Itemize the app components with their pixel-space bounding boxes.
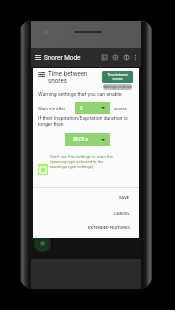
button[interactable]: More options [132, 48, 139, 67]
staticText: snores [114, 106, 127, 111]
staticText: 5 [80, 106, 83, 111]
staticText: 00:05 s [73, 137, 88, 142]
staticText: Time between snores [107, 73, 128, 81]
staticText: If their Inspiration/Expiration duration… [38, 115, 128, 121]
staticText: CANCEL [114, 211, 130, 216]
button[interactable]: Open navigation drawer [31, 48, 44, 67]
button[interactable]: Warnings on phone [103, 84, 132, 90]
button[interactable]: Statistics [99, 48, 110, 67]
button[interactable]: Record [110, 48, 121, 67]
button[interactable]: CANCEL [112, 207, 132, 220]
staticText: SAVE [119, 195, 130, 200]
staticText: warnings type settings) [50, 164, 94, 169]
staticText: Don't use this settings to warn the [50, 154, 113, 159]
staticText: longer than [38, 121, 64, 127]
staticText: snores [48, 77, 67, 84]
staticText: EXTENDED FEATURES [88, 225, 130, 230]
staticText: Warn me after [38, 106, 66, 111]
button[interactable]: 00:05 s [65, 133, 110, 146]
staticText: Snorer Mode [44, 54, 81, 62]
staticText: (warning type selected in the [50, 159, 104, 164]
button[interactable]: EXTENDED FEATURES [86, 221, 132, 234]
button[interactable]: Time between snores [102, 71, 133, 83]
staticText: Warnings on phone [103, 85, 132, 89]
button[interactable]: Help [121, 48, 132, 67]
button[interactable]: Start recording [34, 235, 51, 252]
staticText: Time between [48, 70, 88, 77]
button[interactable]: Don't use this setting [38, 164, 48, 175]
button[interactable]: SAVE [117, 191, 132, 204]
staticText: Warning settings that you can enable: [38, 91, 123, 97]
button[interactable]: 5 [75, 102, 110, 114]
